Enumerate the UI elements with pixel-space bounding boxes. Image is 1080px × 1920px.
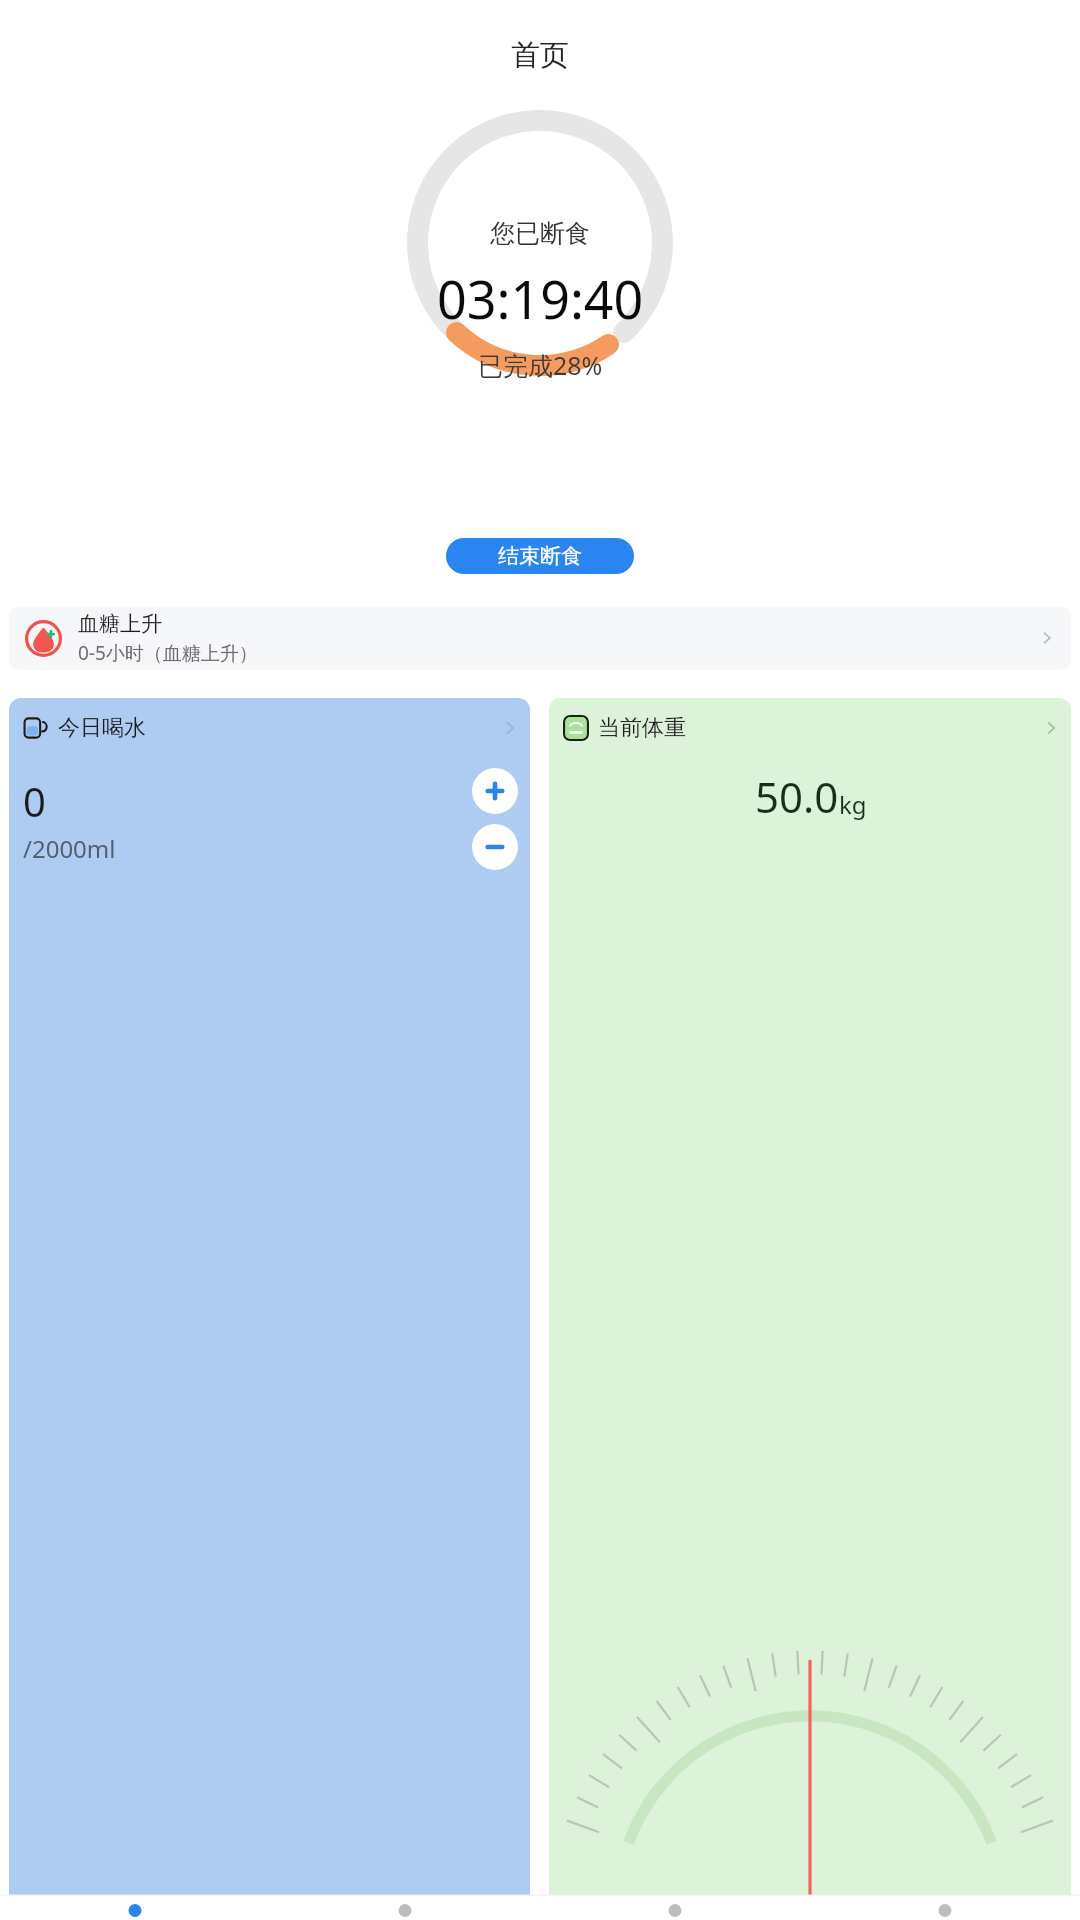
staticText: 结束断食 — [498, 543, 582, 569]
button[interactable]: Tab — [270, 1895, 540, 1920]
staticText: 血糖上升 — [78, 611, 162, 637]
staticText: kg — [839, 788, 867, 821]
button[interactable]: Tab — [810, 1895, 1080, 1920]
staticText: 今日喝水 — [58, 714, 146, 742]
staticText: 0 — [23, 774, 46, 828]
staticText: 当前体重 — [598, 714, 686, 742]
staticText: 0-5小时（血糖上升） — [78, 640, 258, 666]
button[interactable]: Tab — [0, 1895, 270, 1920]
staticText: 首页 — [511, 37, 569, 74]
button[interactable]: Tab — [540, 1895, 810, 1920]
staticText: /2000ml — [23, 832, 116, 865]
button[interactable]: 结束断食 — [446, 538, 634, 574]
button[interactable]: 今日喝水 — [9, 698, 530, 1895]
button[interactable]: 血糖上升 — [9, 606, 1071, 670]
staticText: 03:19:40 — [437, 263, 644, 334]
button[interactable]: Remove water — [472, 824, 518, 870]
staticText: 您已断食 — [490, 218, 590, 249]
button[interactable]: Add water — [472, 768, 518, 814]
staticText: 50.0 — [755, 768, 839, 825]
staticText: 已完成28% — [478, 348, 603, 382]
button[interactable]: 当前体重 — [549, 698, 1071, 1895]
